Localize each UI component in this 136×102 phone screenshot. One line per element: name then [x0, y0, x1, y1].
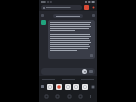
button[interactable]: Send: [82, 69, 87, 74]
button[interactable]: Tabs: [84, 5, 89, 10]
button[interactable]: Tool 0: [43, 93, 50, 99]
button[interactable]: More: [88, 93, 93, 99]
button[interactable]: Menu: [41, 13, 95, 18]
button[interactable]: Sticker 1: [56, 84, 62, 90]
button[interactable]: Sticker 4: [82, 84, 88, 90]
other: Menu: [41, 14, 44, 17]
button[interactable]: Tool 1: [54, 93, 61, 99]
button[interactable]: Sticker 0: [47, 84, 53, 90]
button[interactable]: Attach: [89, 70, 93, 73]
button[interactable]: More options: [91, 5, 95, 10]
button[interactable]: Tool 2: [66, 93, 73, 99]
button[interactable]: Close: [91, 85, 95, 89]
button[interactable]: Keyboard: [41, 85, 44, 88]
button[interactable]: Sticker 2: [65, 84, 71, 90]
other: Assistant avatar: [41, 20, 46, 25]
button[interactable]: Address bar: [41, 5, 82, 10]
button[interactable]: Send: [41, 68, 95, 75]
button[interactable]: Sticker 3: [73, 84, 79, 90]
other: Options: [92, 14, 95, 17]
button[interactable]: Tool 3: [77, 93, 84, 99]
button[interactable]: Copy: [48, 20, 95, 59]
